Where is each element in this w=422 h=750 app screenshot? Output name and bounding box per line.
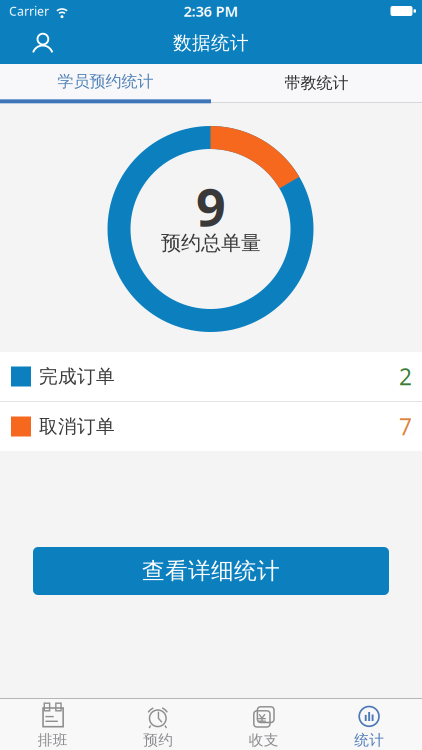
staticText: 排班	[38, 731, 68, 749]
button[interactable]: Profile	[0, 29, 55, 57]
staticText: 数据统计	[173, 31, 249, 54]
staticText: 预约	[143, 731, 173, 749]
button[interactable]: 统计	[316, 699, 422, 750]
button[interactable]: 带教统计	[211, 64, 422, 103]
staticText: 预约总单量	[161, 231, 261, 255]
staticText: 2:36 PM	[183, 1, 238, 21]
staticText: 9	[196, 171, 226, 241]
button[interactable]: 排班	[0, 699, 105, 750]
staticText: 学员预约统计	[57, 72, 153, 91]
staticText: 查看详细统计	[142, 557, 280, 585]
button[interactable]: 预约	[105, 699, 211, 750]
staticText: Carrier	[9, 3, 49, 19]
button[interactable]: 收支	[211, 699, 316, 750]
staticText: 7	[399, 411, 412, 441]
button[interactable]: 查看详细统计	[33, 547, 389, 595]
button[interactable]: 学员预约统计	[0, 64, 211, 103]
staticText: 带教统计	[284, 73, 348, 93]
staticText: 取消订单	[39, 415, 115, 438]
staticText: 统计	[354, 731, 384, 749]
staticText: 2	[399, 361, 412, 391]
staticText: 完成订单	[39, 365, 115, 388]
staticText: 收支	[249, 731, 279, 749]
